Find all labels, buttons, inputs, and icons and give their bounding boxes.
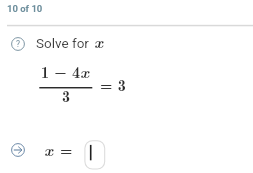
button[interactable]: Submit answer — [11, 143, 25, 157]
staticText: x — [44, 138, 53, 161]
button[interactable]: Hint — [11, 37, 25, 51]
staticText: Solve for — [36, 35, 89, 51]
staticText: 3 — [40, 84, 92, 107]
staticText: 10 of 10 — [7, 3, 43, 14]
staticText: x — [94, 30, 103, 53]
staticText: = 3 — [100, 73, 126, 96]
staticText: ? — [16, 39, 21, 49]
staticText: = — [60, 138, 73, 161]
staticText: 1 − 4x — [41, 60, 90, 83]
button[interactable]: Answer input — [83, 139, 106, 170]
